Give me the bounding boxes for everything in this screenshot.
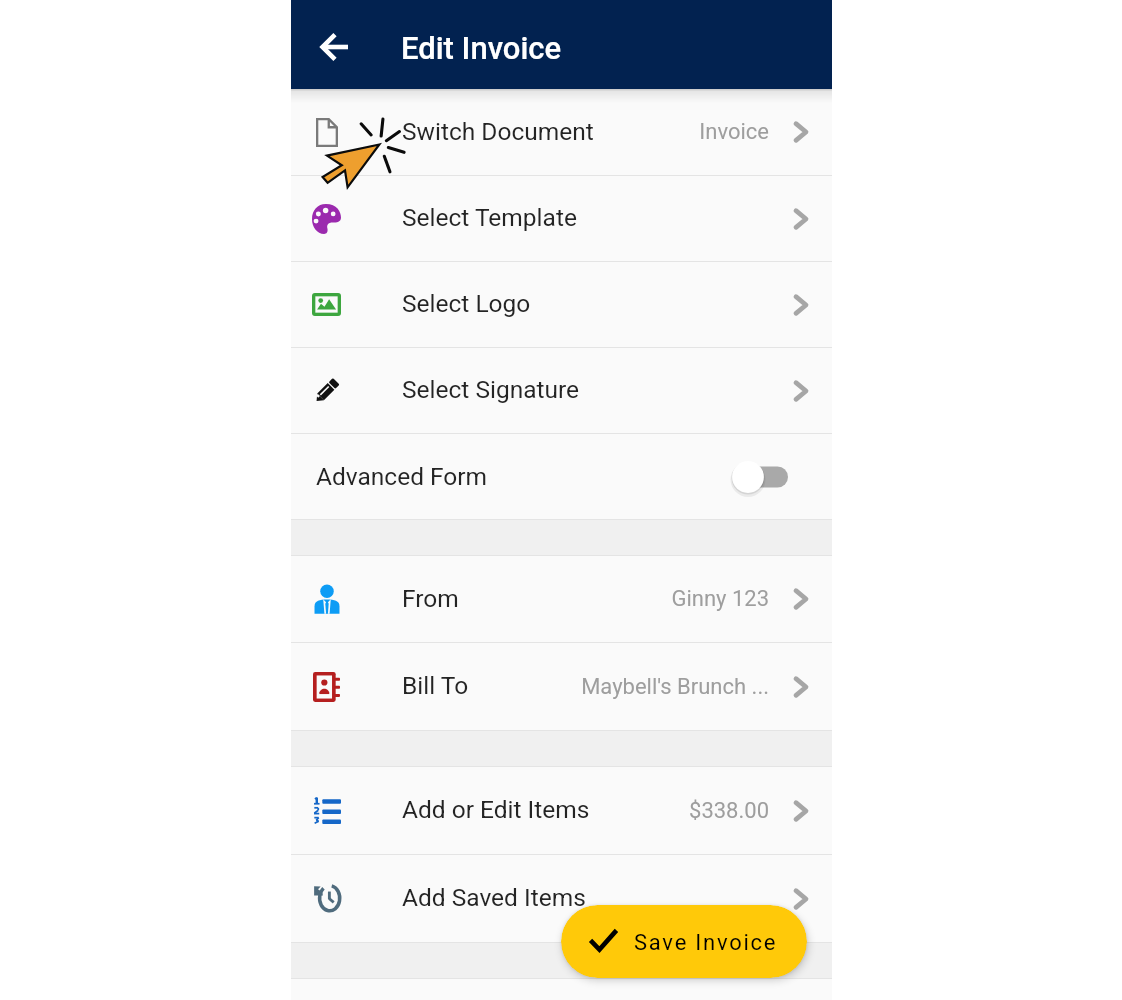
staticText: Switch Document: [402, 117, 594, 146]
button[interactable]: From: [291, 556, 832, 642]
staticText: From: [402, 584, 459, 613]
staticText: Maybell's Brunch ...: [469, 674, 769, 700]
staticText: Add or Edit Items: [402, 795, 590, 824]
staticText: Add Saved Items: [402, 883, 586, 912]
staticText: Select Logo: [402, 289, 531, 318]
button[interactable]: Add or Edit Items: [291, 767, 832, 854]
staticText: Bill To: [402, 671, 469, 700]
staticText: Save Invoice: [634, 930, 778, 956]
staticText: Advanced Form: [316, 462, 488, 491]
button[interactable]: Bill To: [291, 643, 832, 730]
button[interactable]: Select Logo: [291, 262, 832, 347]
staticText: Select Signature: [402, 375, 580, 404]
button[interactable]: Switch Document: [291, 89, 832, 175]
button[interactable]: Save Invoice: [561, 905, 807, 978]
button[interactable]: Back: [311, 23, 359, 71]
staticText: Ginny 123: [469, 586, 769, 612]
staticText: $338.00: [469, 798, 769, 824]
button[interactable]: Add Saved Items: [291, 855, 832, 942]
button[interactable]: Select Signature: [291, 348, 832, 433]
staticText: Select Template: [402, 203, 577, 232]
button[interactable]: Select Template: [291, 176, 832, 261]
button[interactable]: Advanced Form: [291, 434, 832, 519]
staticText: Edit Invoice: [401, 30, 562, 66]
staticText: Invoice: [469, 119, 769, 145]
